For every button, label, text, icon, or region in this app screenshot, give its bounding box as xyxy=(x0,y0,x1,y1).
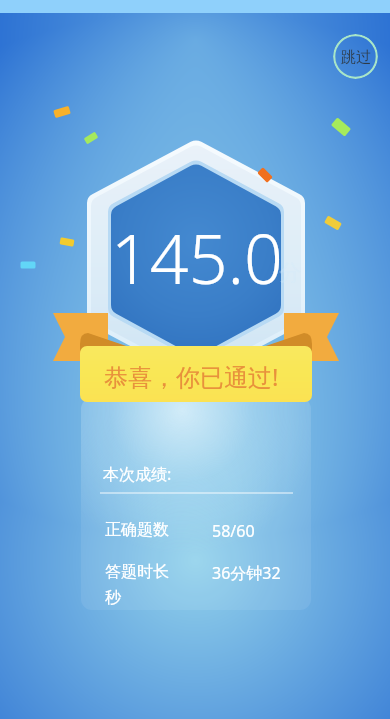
staticText: 恭喜，你已通过! xyxy=(104,360,279,393)
staticText: 秒 xyxy=(105,588,121,608)
staticText: 145.0 xyxy=(111,211,283,304)
staticText: 本次成绩: xyxy=(103,463,172,485)
staticText: 分 xyxy=(279,259,301,287)
staticText: 正确题数 xyxy=(105,520,169,540)
staticText: 58/60 xyxy=(212,520,255,542)
staticText: 跳过 xyxy=(341,48,371,67)
button[interactable]: 跳过 xyxy=(333,34,378,79)
staticText: 36分钟32 xyxy=(212,562,281,584)
staticText: 答题时长 xyxy=(105,562,169,582)
